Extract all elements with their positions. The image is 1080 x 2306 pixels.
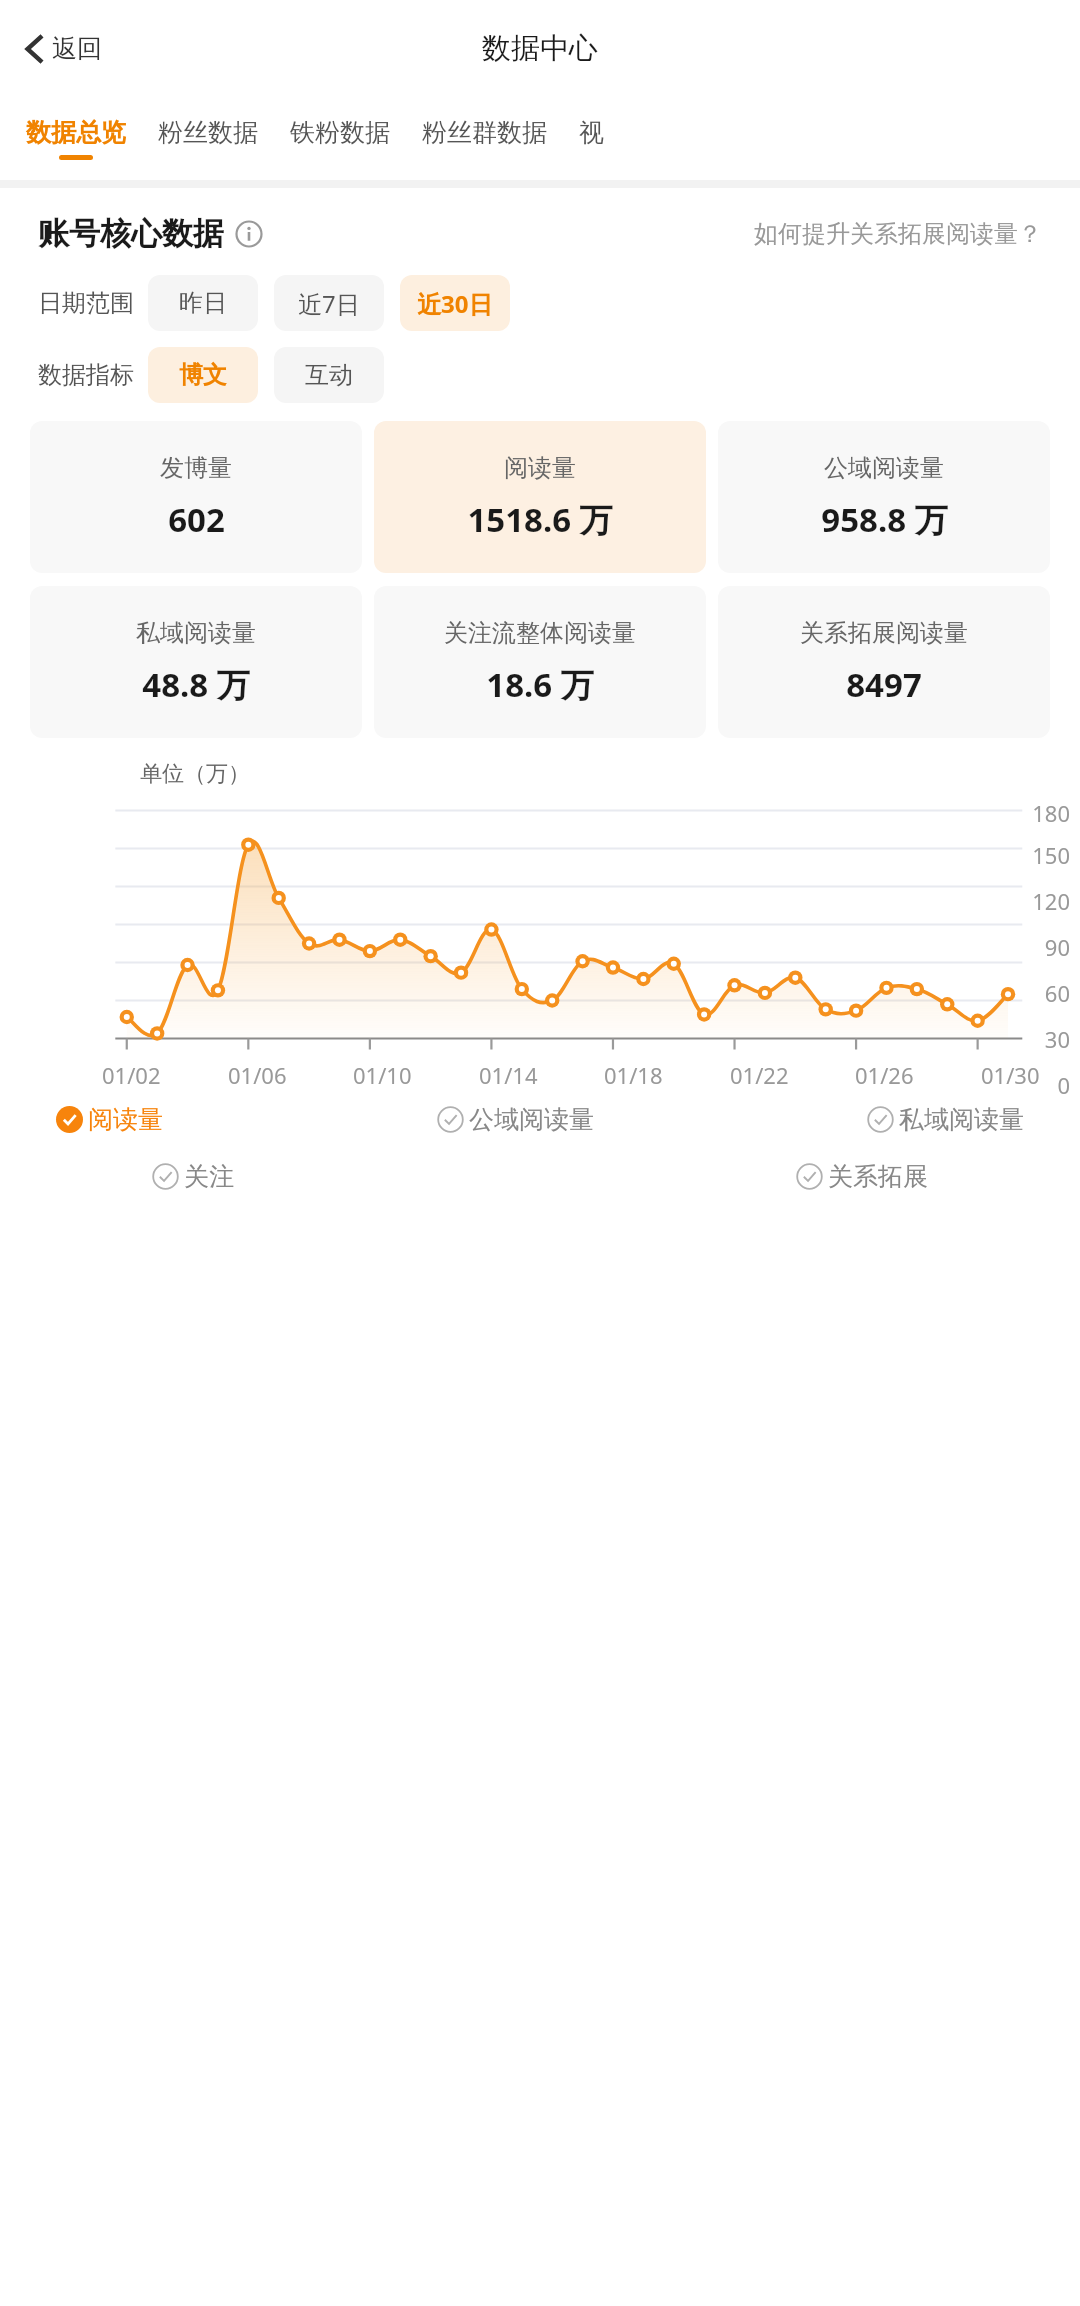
button[interactable]: 近7日 (274, 275, 384, 331)
staticText: 1518.6 万 (467, 497, 613, 542)
staticText: 公域阅读量 (469, 1104, 594, 1135)
staticText: 60 (1004, 978, 1070, 1008)
button[interactable]: 铁粉数据 (286, 117, 394, 160)
staticText: 18.6 万 (486, 662, 594, 707)
button[interactable]: 昨日 (148, 275, 258, 331)
staticText: 粉丝群数据 (422, 117, 547, 148)
button[interactable]: 博文 (148, 347, 258, 403)
button[interactable]: 粉丝群数据 (418, 117, 551, 160)
staticText: 01/26 (855, 1060, 914, 1090)
staticText: 返回 (52, 33, 102, 64)
staticText: 关注 (184, 1161, 234, 1192)
staticText: 关注流整体阅读量 (444, 618, 636, 648)
staticText: 关系拓展 (828, 1161, 928, 1192)
staticText: 私域阅读量 (136, 618, 256, 648)
button[interactable]: 说明 (234, 219, 264, 249)
staticText: 8497 (846, 662, 922, 707)
staticText: 01/10 (353, 1060, 412, 1090)
button[interactable]: 关系拓展 (794, 1159, 930, 1194)
staticText: 公域阅读量 (824, 453, 944, 483)
staticText: 01/06 (228, 1060, 287, 1090)
staticText: 近7日 (298, 287, 360, 320)
button[interactable]: 关系拓展阅读量 (718, 586, 1050, 738)
button[interactable]: 私域阅读量 (865, 1102, 1026, 1137)
staticText: 博文 (179, 360, 227, 390)
staticText: 数据总览 (26, 117, 126, 148)
button[interactable]: 返回 (18, 27, 108, 70)
staticText: 账号核心数据 (38, 214, 224, 253)
button[interactable]: 近30日 (400, 275, 510, 331)
staticText: 单位（万） (140, 760, 250, 788)
staticText: 602 (168, 497, 225, 542)
staticText: 48.8 万 (142, 662, 250, 707)
staticText: 120 (1004, 886, 1070, 916)
staticText: 私域阅读量 (899, 1104, 1024, 1135)
staticText: 如何提升关系拓展阅读量？ (754, 219, 1042, 249)
staticText: 01/14 (479, 1060, 538, 1090)
staticText: 近30日 (417, 287, 493, 320)
button[interactable]: 公域阅读量 (435, 1102, 596, 1137)
staticText: 90 (1004, 932, 1070, 962)
button[interactable]: 视 (575, 117, 608, 160)
staticText: 关系拓展阅读量 (800, 618, 968, 648)
staticText: 阅读量 (504, 453, 576, 483)
button[interactable]: 如何提升关系拓展阅读量？ (754, 219, 1042, 249)
staticText: 互动 (305, 360, 353, 390)
staticText: 发博量 (160, 453, 232, 483)
staticText: 30 (1004, 1024, 1070, 1054)
button[interactable]: 发博量 (30, 421, 362, 573)
staticText: 昨日 (179, 288, 227, 318)
button[interactable]: 关注流整体阅读量 (374, 586, 706, 738)
staticText: 铁粉数据 (290, 117, 390, 148)
button[interactable]: 关注 (150, 1159, 236, 1194)
staticText: 数据中心 (482, 30, 598, 67)
staticText: 0 (1004, 1070, 1070, 1094)
button[interactable]: 互动 (274, 347, 384, 403)
button[interactable]: 公域阅读量 (718, 421, 1050, 573)
staticText: 日期范围 (38, 288, 134, 318)
button[interactable]: 数据总览 (22, 117, 130, 160)
staticText: 180 (1004, 798, 1070, 828)
staticText: 阅读量 (88, 1104, 163, 1135)
button[interactable]: 阅读量 (54, 1102, 165, 1137)
button[interactable]: 阅读量 (374, 421, 706, 573)
button[interactable]: 粉丝数据 (154, 117, 262, 160)
staticText: 01/30 (981, 1060, 1040, 1090)
staticText: 01/18 (604, 1060, 663, 1090)
staticText: 01/02 (102, 1060, 161, 1090)
staticText: 数据指标 (38, 360, 134, 390)
staticText: 粉丝数据 (158, 117, 258, 148)
staticText: 958.8 万 (821, 497, 948, 542)
staticText: 视 (579, 117, 604, 148)
staticText: 01/22 (730, 1060, 789, 1090)
staticText: 150 (1004, 840, 1070, 870)
button[interactable]: 私域阅读量 (30, 586, 362, 738)
